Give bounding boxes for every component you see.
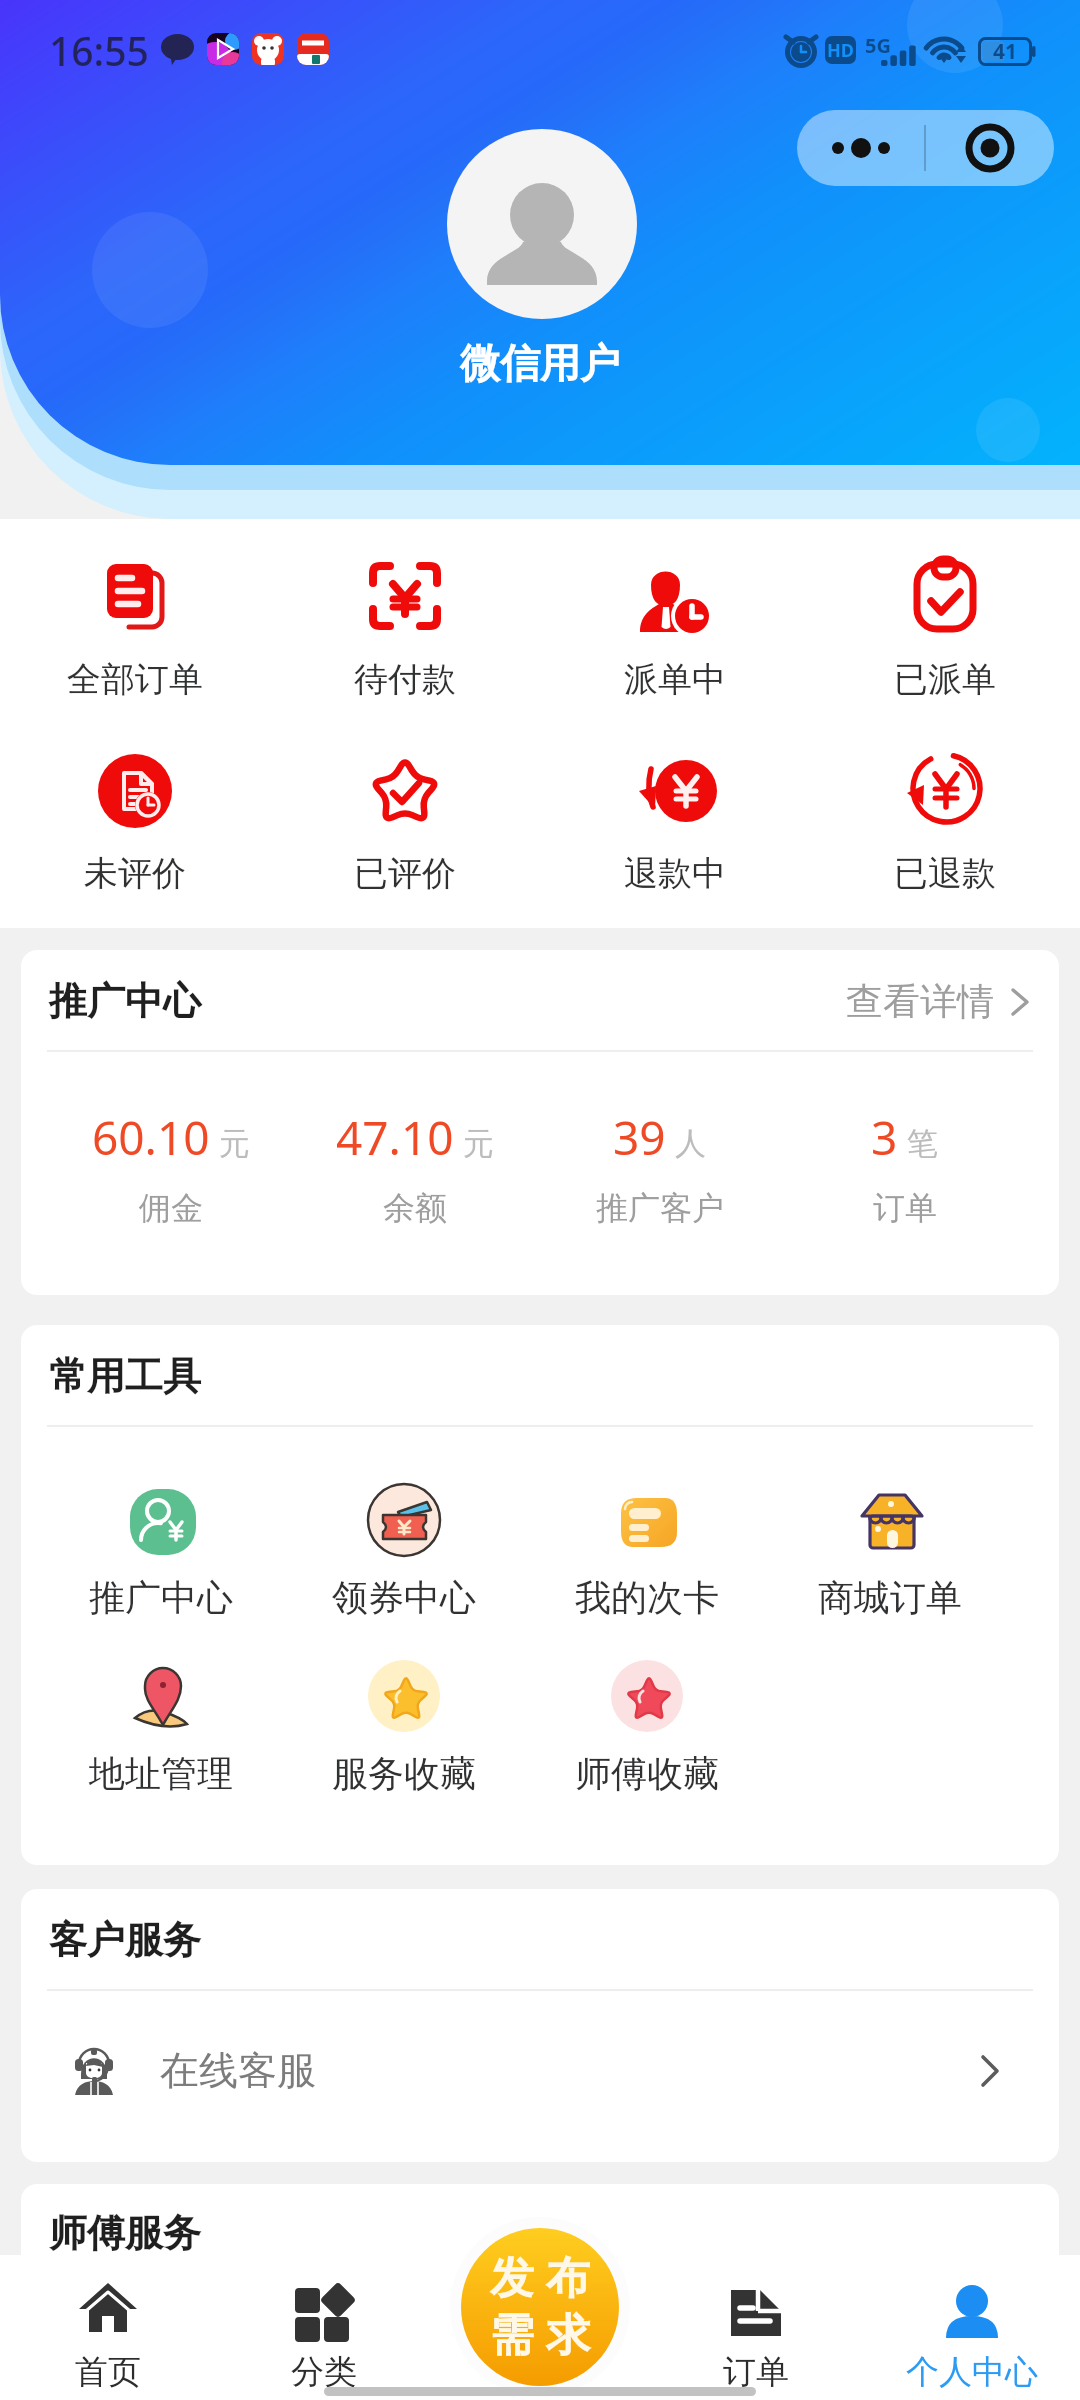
staticText: 求 <box>546 2308 590 2363</box>
staticText: 在线客服 <box>160 2046 316 2095</box>
staticText: 派单中 <box>624 658 726 701</box>
staticText: 笔 <box>907 1124 938 1163</box>
staticText: 佣金 <box>139 1188 203 1228</box>
button[interactable]: 退款中 <box>540 753 810 895</box>
staticText: 39 <box>613 1106 666 1169</box>
button[interactable]: 领券中心 <box>282 1483 525 1620</box>
button[interactable]: 派单中 <box>540 559 810 701</box>
button[interactable]: 师傅收藏 <box>525 1659 768 1796</box>
button[interactable]: 服务收藏 <box>282 1659 525 1796</box>
button[interactable]: 个人中心 <box>864 2255 1080 2400</box>
button[interactable]: 全部订单 <box>0 559 270 701</box>
staticText: 客户服务 <box>49 1916 201 1964</box>
staticText: 全部订单 <box>67 658 203 701</box>
staticText: 5G <box>865 32 891 59</box>
staticText: 首页 <box>75 2351 141 2393</box>
button[interactable]: Avatar <box>447 129 637 319</box>
button[interactable]: 已退款 <box>810 753 1080 895</box>
button[interactable]: 已派单 <box>810 559 1080 701</box>
staticText: 余额 <box>383 1188 447 1228</box>
staticText: 布 <box>546 2251 590 2306</box>
staticText: 分类 <box>291 2351 357 2393</box>
button[interactable]: 60.10 <box>49 1113 293 1235</box>
button[interactable]: 我的次卡 <box>525 1483 768 1620</box>
button[interactable]: 3 <box>782 1113 1027 1235</box>
staticText: 已评价 <box>354 852 456 895</box>
button[interactable]: 查看详情 <box>846 978 1059 1025</box>
staticText: 已派单 <box>894 658 996 701</box>
staticText: 16:55 <box>49 24 149 77</box>
staticText: 订单 <box>723 2351 789 2393</box>
staticText: 师傅收藏 <box>575 1751 719 1796</box>
staticText: 服务收藏 <box>332 1751 476 1796</box>
staticText: 微信用户 <box>460 338 620 388</box>
staticText: 需 <box>490 2308 534 2363</box>
button[interactable]: Close <box>926 110 1054 186</box>
button[interactable]: More <box>797 110 924 186</box>
staticText: HD <box>827 38 854 63</box>
staticText: 已退款 <box>894 852 996 895</box>
staticText: 领券中心 <box>332 1575 476 1620</box>
staticText: 47.10 <box>336 1106 454 1169</box>
staticText: 待付款 <box>354 658 456 701</box>
button[interactable]: 推广中心 <box>39 1483 282 1620</box>
staticText: 查看详情 <box>846 978 994 1025</box>
staticText: 推广客户 <box>596 1188 724 1228</box>
staticText: 订单 <box>873 1188 937 1228</box>
staticText: 推广中心 <box>89 1575 233 1620</box>
button[interactable]: 分类 <box>216 2255 432 2400</box>
button[interactable]: 47.10 <box>293 1113 537 1235</box>
staticText: 3 <box>871 1106 898 1169</box>
staticText: 我的次卡 <box>575 1575 719 1620</box>
staticText: 师傅服务 <box>49 2209 201 2257</box>
staticText: 退款中 <box>624 852 726 895</box>
staticText: 元 <box>219 1124 250 1163</box>
staticText: 元 <box>463 1124 494 1163</box>
button[interactable]: 在线客服 <box>21 1991 1059 2162</box>
button[interactable]: 商城订单 <box>768 1483 1011 1620</box>
button[interactable]: 地址管理 <box>39 1659 282 1796</box>
button[interactable]: 订单 <box>648 2255 864 2400</box>
staticText: 发 <box>490 2251 534 2306</box>
staticText: 常用工具 <box>49 1352 201 1400</box>
staticText: 地址管理 <box>89 1751 233 1796</box>
button[interactable]: 待付款 <box>270 559 540 701</box>
button[interactable]: 首页 <box>0 2255 216 2400</box>
staticText: 个人中心 <box>906 2351 1038 2393</box>
staticText: 推广中心 <box>49 977 201 1025</box>
button[interactable]: 已评价 <box>270 753 540 895</box>
button[interactable]: 未评价 <box>0 753 270 895</box>
staticText: 人 <box>675 1124 706 1163</box>
button[interactable]: 39 <box>537 1113 782 1235</box>
button[interactable]: 发 <box>461 2228 619 2386</box>
staticText: 未评价 <box>84 852 186 895</box>
staticText: 41 <box>993 37 1018 66</box>
staticText: 60.10 <box>92 1106 210 1169</box>
staticText: 商城订单 <box>818 1575 962 1620</box>
